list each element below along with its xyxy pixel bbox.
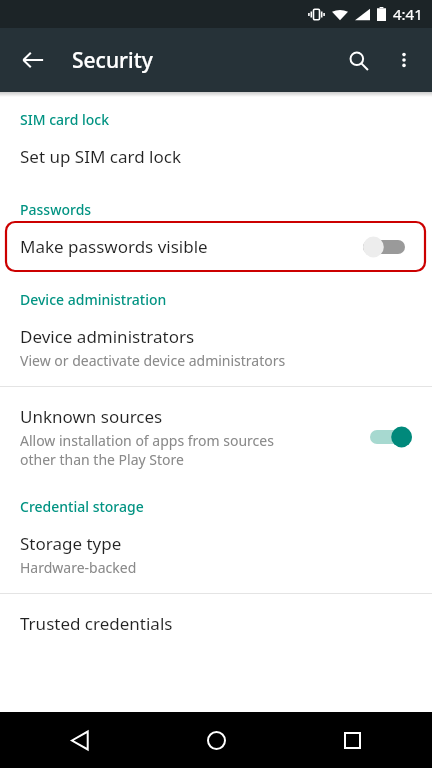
- button[interactable]: Device administrators: [0, 311, 432, 386]
- button[interactable]: Storage type: [0, 518, 432, 593]
- button[interactable]: Off: [363, 234, 405, 260]
- button[interactable]: Back: [10, 37, 56, 83]
- staticText: Set up SIM card lock: [20, 145, 181, 168]
- staticText: Security: [72, 46, 153, 75]
- button[interactable]: Make passwords visible: [6, 221, 425, 272]
- staticText: Allow installation of apps from sources: [20, 431, 274, 450]
- staticText: SIM card lock: [20, 110, 110, 129]
- button[interactable]: Recent apps: [288, 712, 432, 768]
- button[interactable]: Set up SIM card lock: [0, 131, 432, 188]
- staticText: Trusted credentials: [20, 612, 173, 635]
- staticText: Credential storage: [20, 497, 144, 516]
- button[interactable]: More options: [382, 38, 426, 82]
- button[interactable]: Trusted credentials: [0, 594, 432, 635]
- staticText: Unknown sources: [20, 405, 163, 428]
- staticText: Device administration: [20, 290, 167, 309]
- staticText: other than the Play Store: [20, 450, 184, 469]
- button[interactable]: Home: [144, 712, 288, 768]
- staticText: Hardware-backed: [20, 558, 137, 577]
- button[interactable]: Back: [0, 712, 144, 768]
- staticText: Storage type: [20, 532, 122, 555]
- button[interactable]: Unknown sources: [0, 387, 432, 487]
- staticText: View or deactivate device administrators: [20, 351, 286, 370]
- staticText: Passwords: [20, 200, 92, 219]
- staticText: 4:41: [393, 4, 423, 24]
- button[interactable]: On: [370, 424, 412, 450]
- staticText: Make passwords visible: [20, 235, 208, 258]
- staticText: Device administrators: [20, 325, 195, 348]
- button[interactable]: Search: [334, 36, 382, 84]
